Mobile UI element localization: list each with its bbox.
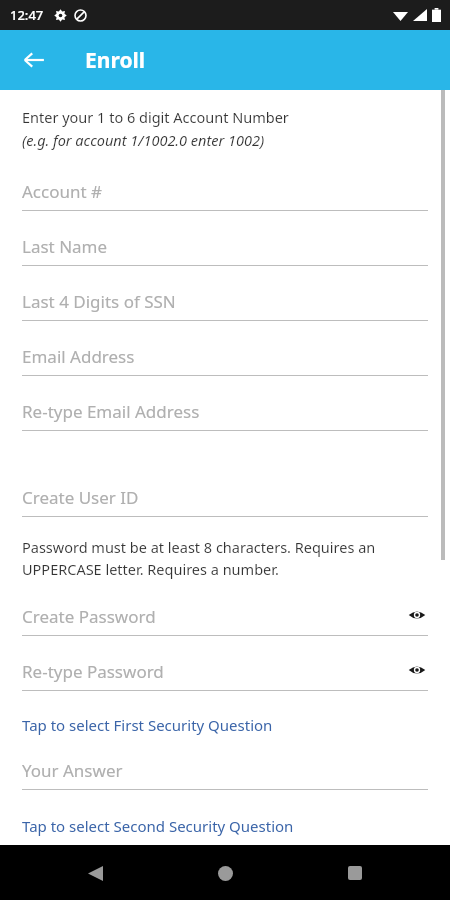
staticText: Email Address xyxy=(22,345,135,368)
button[interactable]: Back xyxy=(75,853,115,893)
staticText: 12:47 xyxy=(10,6,44,24)
staticText: Password must be at least 8 characters. … xyxy=(22,537,376,557)
staticText: Re-type Password xyxy=(22,660,164,683)
staticText: Re-type Email Address xyxy=(22,400,200,423)
button[interactable]: Show password xyxy=(405,658,429,682)
staticText: Last Name xyxy=(22,235,108,258)
button[interactable]: Show password xyxy=(405,603,429,627)
button[interactable]: Tap to select First Security Question xyxy=(0,712,450,738)
button[interactable]: Recent apps xyxy=(335,853,375,893)
staticText: Account # xyxy=(22,180,103,203)
button[interactable]: Back xyxy=(10,36,58,84)
staticText: Create User ID xyxy=(22,486,139,509)
button[interactable]: Last Name xyxy=(0,223,450,278)
button[interactable]: Re-type Password xyxy=(0,648,450,703)
button[interactable]: Your Answer xyxy=(0,747,450,802)
staticText: UPPERCASE letter. Requires a number. xyxy=(22,559,279,579)
button[interactable]: Last 4 Digits of SSN xyxy=(0,278,450,333)
button[interactable]: Tap to select Second Security Question xyxy=(0,813,450,839)
staticText: Enroll xyxy=(85,46,146,75)
button[interactable]: Email Address xyxy=(0,333,450,388)
button[interactable]: Home xyxy=(205,853,245,893)
staticText: Last 4 Digits of SSN xyxy=(22,290,176,313)
button[interactable]: Create User ID xyxy=(0,474,450,529)
staticText: Create Password xyxy=(22,605,156,628)
staticText: Tap to select Second Security Question xyxy=(22,816,294,836)
staticText: Enter your 1 to 6 digit Account Number xyxy=(22,107,289,127)
button[interactable]: Account # xyxy=(0,168,450,223)
button[interactable]: Create Password xyxy=(0,593,450,648)
staticText: (e.g. for account 1/1002.0 enter 1002) xyxy=(22,130,265,150)
staticText: Tap to select First Security Question xyxy=(22,715,273,735)
button[interactable]: Re-type Email Address xyxy=(0,388,450,443)
staticText: Your Answer xyxy=(22,759,123,782)
